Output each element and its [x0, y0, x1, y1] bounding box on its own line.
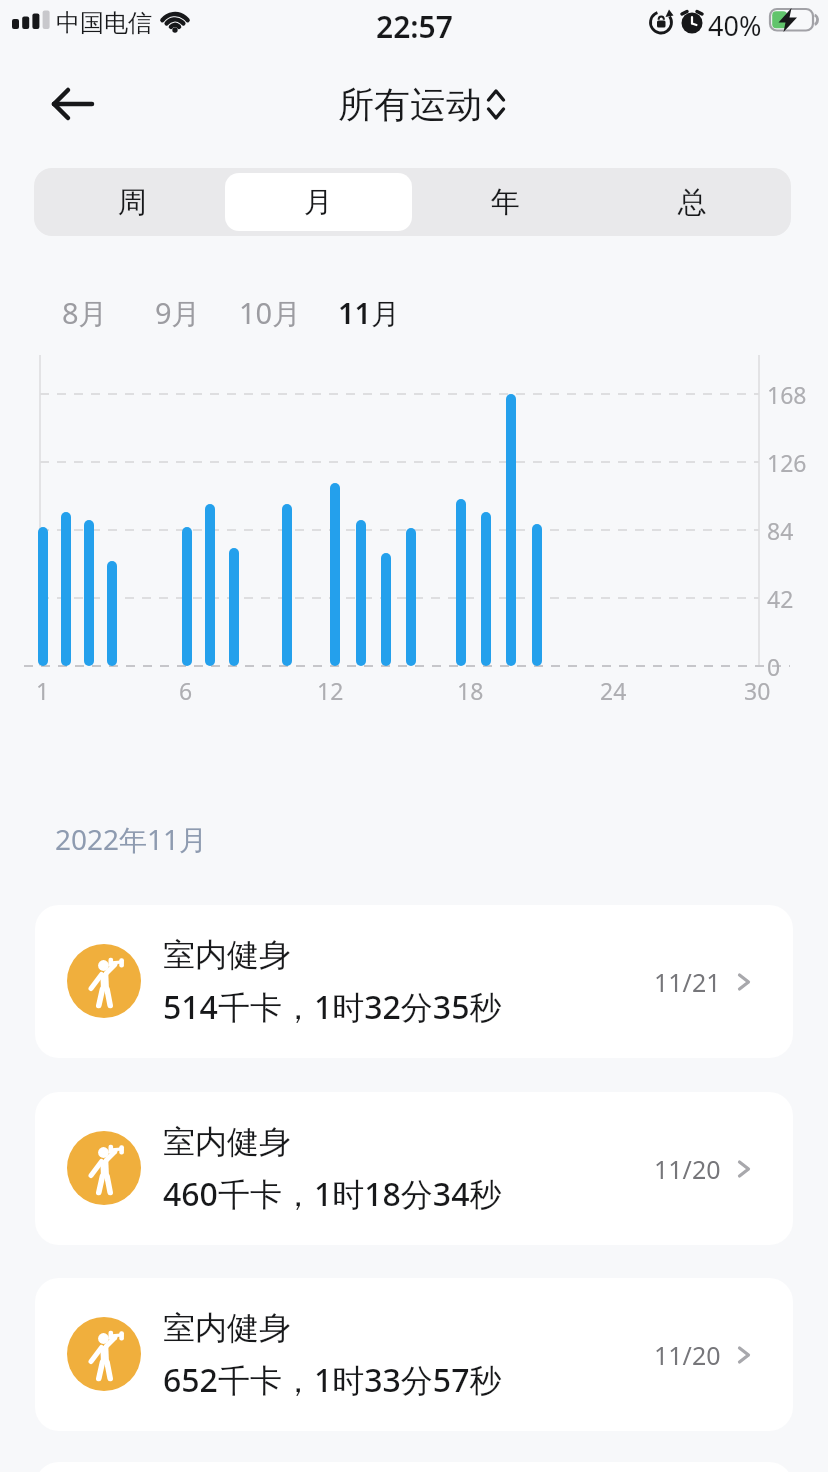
staticText: 11/20 — [654, 1338, 721, 1372]
staticText: 室内健身 — [163, 935, 291, 975]
staticText: 8月 — [62, 293, 108, 333]
staticText: 9月 — [155, 293, 201, 333]
staticText: 22:57 — [376, 6, 453, 47]
staticText: 11/21 — [654, 965, 721, 999]
button[interactable]: 11月 — [338, 293, 401, 333]
button[interactable]: 总 — [599, 173, 786, 231]
staticText: 中国电信 — [56, 8, 152, 38]
button[interactable]: 9月 — [155, 293, 201, 333]
staticText: 30 — [744, 675, 771, 706]
staticText: 月 — [304, 184, 333, 221]
button[interactable] — [44, 84, 104, 124]
staticText: 12 — [317, 675, 344, 706]
staticText: 0 — [767, 651, 781, 682]
staticText: 126 — [767, 447, 807, 478]
staticText: 24 — [600, 675, 627, 706]
staticText: 460千卡，1时18分34秒 — [163, 1172, 502, 1216]
staticText: 11月 — [338, 293, 401, 333]
staticText: 42 — [767, 583, 794, 614]
button[interactable]: 年 — [412, 173, 599, 231]
staticText: 652千卡，1时33分57秒 — [163, 1358, 502, 1402]
staticText: 168 — [767, 379, 807, 410]
staticText: 1 — [36, 675, 50, 706]
staticText: 室内健身 — [163, 1122, 291, 1162]
button[interactable]: 10月 — [239, 293, 302, 333]
staticText: 84 — [767, 515, 794, 546]
button[interactable]: 室内健身 — [35, 1092, 793, 1245]
button[interactable]: 月 — [225, 173, 412, 231]
staticText: 18 — [457, 675, 484, 706]
staticText: 514千卡，1时32分35秒 — [163, 985, 502, 1029]
staticText: 11/20 — [654, 1152, 721, 1186]
staticText: 周 — [118, 184, 147, 221]
staticText: 室内健身 — [163, 1308, 291, 1348]
staticText: 6 — [179, 675, 193, 706]
staticText: 2022年11月 — [55, 820, 208, 858]
button[interactable]: 所有运动 — [338, 82, 506, 127]
staticText: 总 — [678, 184, 707, 221]
button[interactable]: 周 — [39, 173, 225, 231]
staticText: 年 — [491, 184, 520, 221]
button[interactable]: 室内健身 — [35, 1278, 793, 1431]
button[interactable]: 8月 — [62, 293, 108, 333]
staticText: 10月 — [239, 293, 302, 333]
button[interactable]: 室内健身 — [35, 905, 793, 1058]
staticText: 所有运动 — [338, 82, 482, 127]
staticText: 40% — [708, 7, 762, 44]
